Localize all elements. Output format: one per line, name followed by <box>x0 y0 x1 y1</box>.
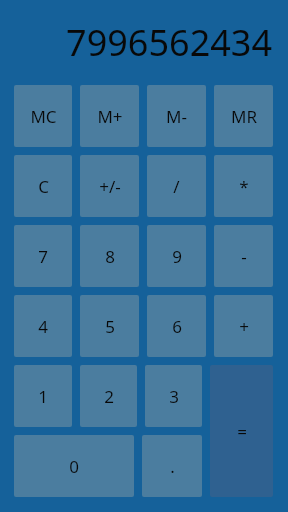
button[interactable]: +/- <box>80 155 139 217</box>
staticText: + <box>239 315 249 338</box>
staticText: MR <box>231 105 257 128</box>
button[interactable]: 5 <box>80 295 139 357</box>
button[interactable]: 7 <box>14 225 72 287</box>
button[interactable]: - <box>214 225 273 287</box>
button[interactable]: / <box>147 155 206 217</box>
button[interactable]: 3 <box>145 365 202 427</box>
staticText: +/- <box>99 175 121 198</box>
button[interactable]: 2 <box>80 365 137 427</box>
button[interactable]: + <box>214 295 273 357</box>
button[interactable]: MC <box>14 85 72 147</box>
button[interactable]: M- <box>147 85 206 147</box>
button[interactable]: 9 <box>147 225 206 287</box>
staticText: 2 <box>104 385 114 408</box>
staticText: MC <box>30 105 57 128</box>
staticText: = <box>237 420 247 443</box>
staticText: C <box>38 175 49 198</box>
button[interactable]: 8 <box>80 225 139 287</box>
button[interactable]: C <box>14 155 72 217</box>
staticText: 6 <box>172 315 182 338</box>
staticText: 0 <box>69 455 79 478</box>
button[interactable]: 0 <box>14 435 134 497</box>
button[interactable]: . <box>142 435 202 497</box>
staticText: 3 <box>169 385 179 408</box>
button[interactable]: MR <box>214 85 273 147</box>
staticText: 1 <box>38 385 48 408</box>
staticText: 8 <box>105 245 115 268</box>
staticText: * <box>239 175 249 198</box>
staticText: . <box>170 455 175 478</box>
staticText: - <box>241 245 247 268</box>
staticText: M- <box>166 105 187 128</box>
staticText: 9 <box>172 245 182 268</box>
staticText: 5 <box>105 315 115 338</box>
staticText: 7996562434 <box>66 18 272 67</box>
staticText: / <box>173 175 180 198</box>
button[interactable]: * <box>214 155 273 217</box>
button[interactable]: = <box>210 365 273 497</box>
button[interactable]: 6 <box>147 295 206 357</box>
button[interactable]: M+ <box>80 85 139 147</box>
button[interactable]: 1 <box>14 365 72 427</box>
staticText: 4 <box>38 315 48 338</box>
button[interactable]: 4 <box>14 295 72 357</box>
staticText: M+ <box>97 105 123 128</box>
staticText: 7 <box>38 245 48 268</box>
